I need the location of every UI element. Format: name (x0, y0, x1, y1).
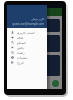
staticText: کاربر مهمان (31, 17, 44, 21)
staticText: راهنما (17, 51, 25, 54)
staticText: پخش (17, 46, 24, 49)
staticText: جستجو (17, 41, 26, 44)
button[interactable]: راهنما (7, 50, 47, 55)
staticText: خروج (17, 61, 24, 64)
staticText: حساب کاربری (17, 31, 35, 35)
button[interactable]: خروج (7, 60, 47, 65)
button[interactable]: پخش (7, 45, 47, 50)
staticText: علاقه (17, 36, 24, 39)
button[interactable]: علاقه (7, 35, 47, 40)
button[interactable]: Add (52, 80, 59, 87)
staticText: guest.user@example.com (12, 22, 44, 26)
staticText: تنظیمات (17, 56, 28, 59)
button[interactable]: جستجو (7, 40, 47, 45)
button[interactable]: حساب کاربری (7, 30, 47, 35)
button[interactable]: تنظیمات (7, 55, 47, 60)
